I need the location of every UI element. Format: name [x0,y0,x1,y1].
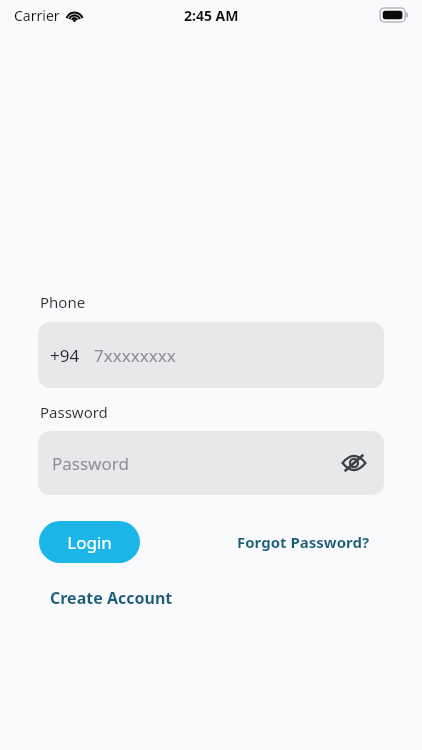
staticText: Login [67,531,112,554]
button[interactable]: Login [39,521,140,563]
staticText: 7xxxxxxxx [94,344,176,367]
staticText: Forgot Password? [237,532,370,552]
staticText: Create Account [50,587,173,609]
staticText: 2:45 AM [184,6,239,25]
button[interactable]: Create Account [48,581,175,615]
button[interactable]: +94 [38,322,384,388]
button[interactable]: Password [38,431,384,495]
staticText: Password [40,402,108,422]
staticText: Phone [40,292,86,312]
button[interactable]: Forgot Password? [235,526,372,558]
staticText: Carrier [14,6,60,25]
staticText: +94 [50,344,80,367]
staticText: Password [52,452,334,475]
button[interactable]: Show password [334,443,374,483]
